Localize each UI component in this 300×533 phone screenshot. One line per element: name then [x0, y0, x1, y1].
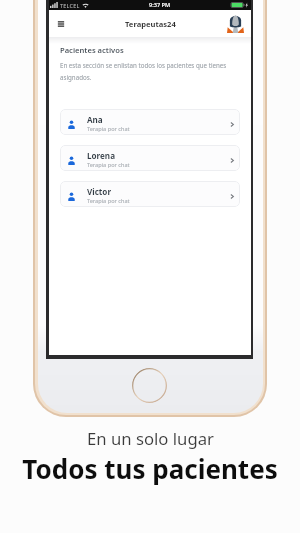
- staticText: Terapia por chat: [87, 197, 130, 205]
- staticText: Lorena: [87, 150, 115, 161]
- staticText: Victor: [87, 186, 112, 197]
- staticText: Ana: [87, 114, 103, 125]
- button[interactable]: Open navigation menu: [53, 16, 69, 32]
- staticText: TELCEL: [60, 2, 80, 9]
- button[interactable]: Ana: [60, 109, 240, 135]
- staticText: En esta sección se enlistan todos los pa…: [60, 61, 240, 82]
- staticText: En un solo lugar: [87, 427, 214, 450]
- staticText: Terapia por chat: [87, 161, 130, 169]
- button[interactable]: Lorena: [60, 145, 240, 171]
- staticText: Terapia por chat: [87, 125, 130, 133]
- staticText: Pacientes activos: [60, 45, 124, 55]
- staticText: 9:37 PM: [149, 1, 171, 9]
- button[interactable]: Your profile: [227, 14, 244, 33]
- staticText: Terapeutas24: [125, 19, 176, 29]
- button[interactable]: Victor: [60, 181, 240, 207]
- staticText: Todos tus pacientes: [22, 451, 278, 486]
